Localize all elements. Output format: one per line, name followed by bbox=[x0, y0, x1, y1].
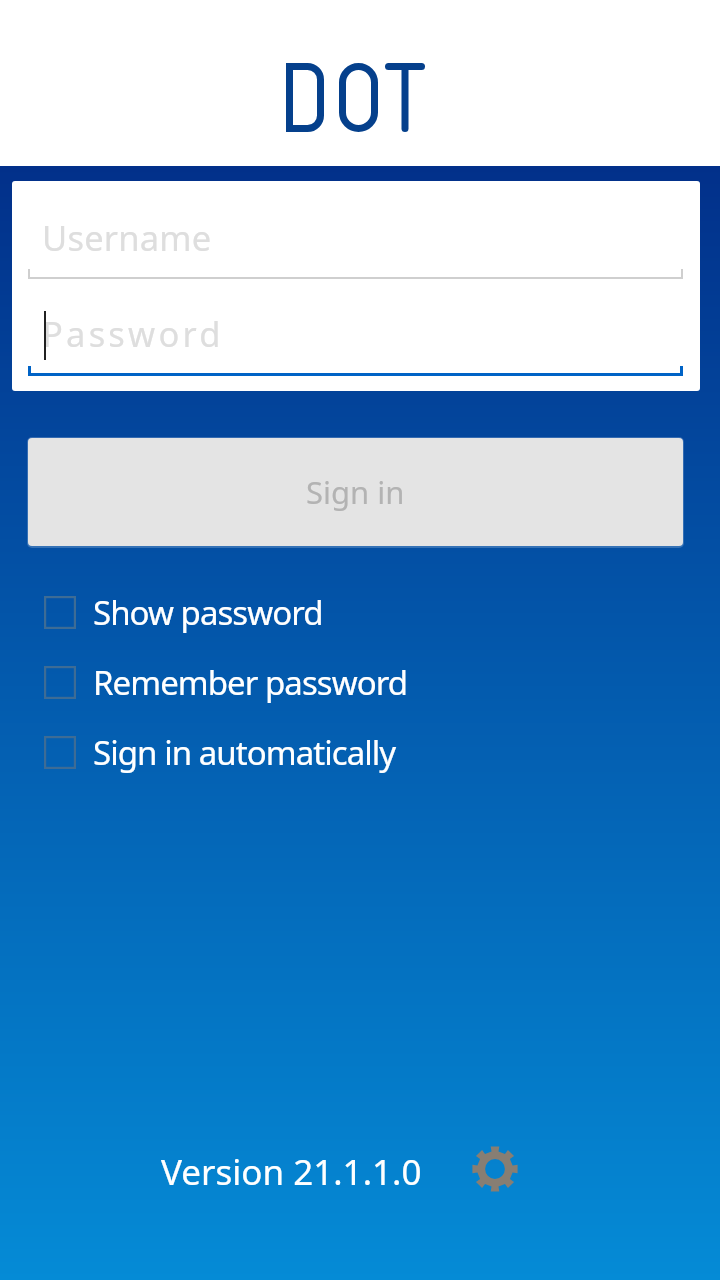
button[interactable]: Remember password bbox=[0, 649, 720, 719]
button[interactable]: Settings bbox=[463, 1137, 527, 1201]
staticText: Remember password bbox=[93, 660, 408, 705]
button[interactable] bbox=[28, 314, 683, 376]
button[interactable] bbox=[28, 217, 683, 279]
staticText: Sign in automatically bbox=[93, 730, 396, 775]
button[interactable]: Show password bbox=[0, 579, 720, 649]
staticText: Sign in bbox=[306, 471, 405, 513]
button[interactable]: Sign in automatically bbox=[0, 719, 720, 789]
staticText: Username bbox=[42, 214, 212, 261]
staticText: Password bbox=[42, 310, 224, 357]
button[interactable]: Sign in bbox=[28, 438, 683, 546]
staticText: Show password bbox=[93, 590, 323, 635]
staticText: Version 21.1.1.0 bbox=[161, 1148, 422, 1196]
